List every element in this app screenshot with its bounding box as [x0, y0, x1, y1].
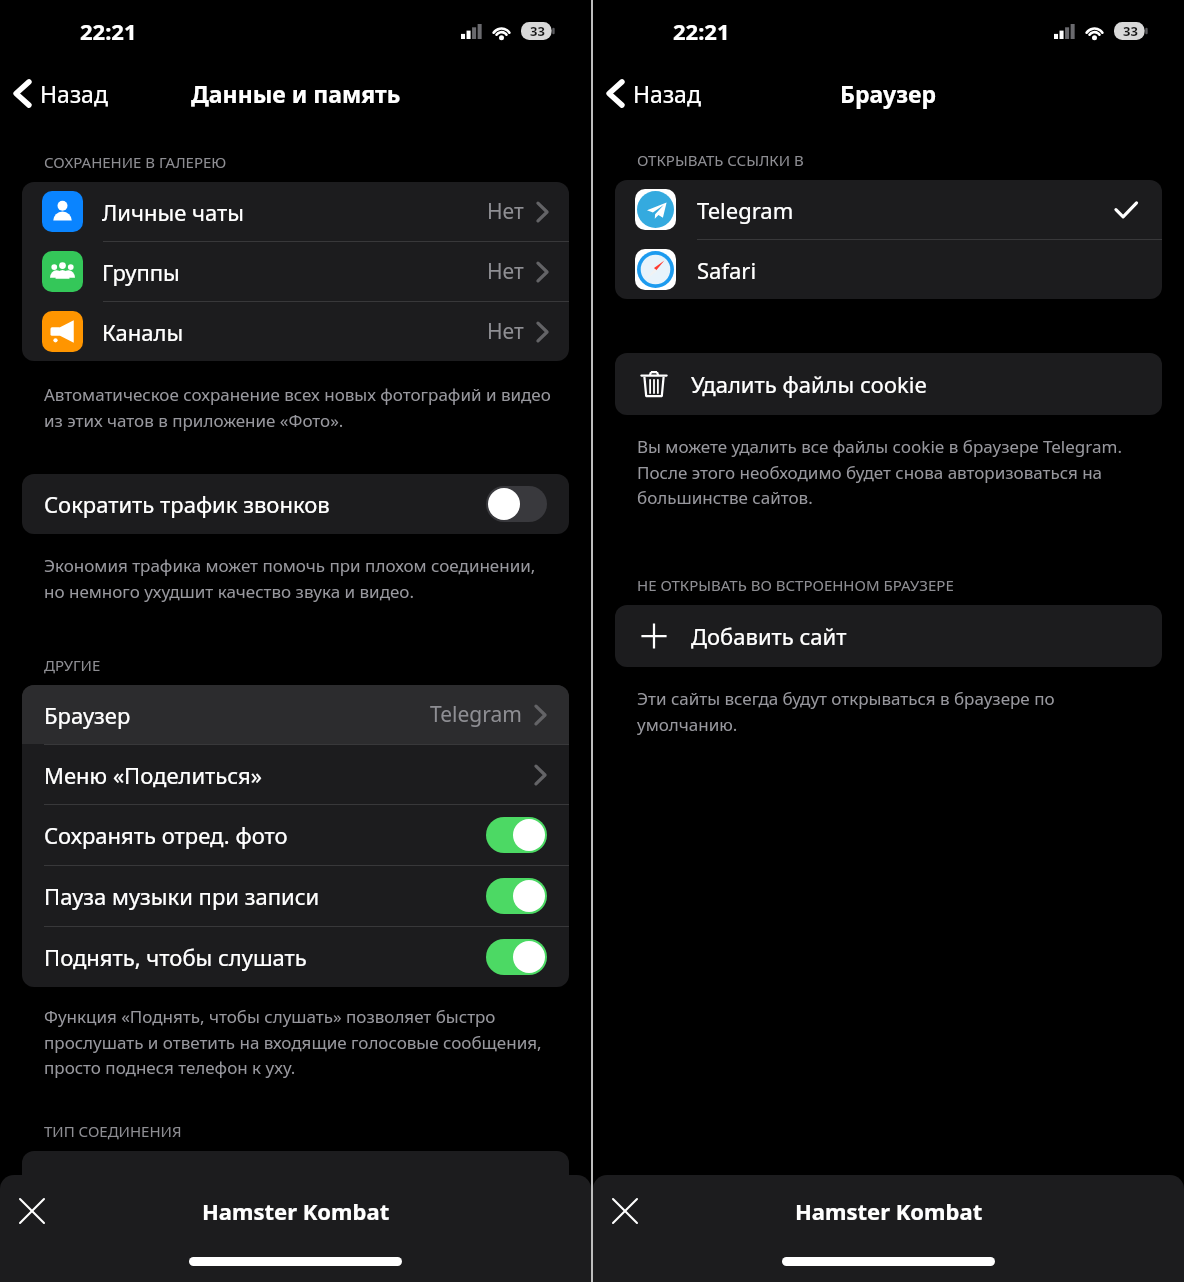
staticText: Личные чаты	[102, 197, 487, 227]
staticText: Группы	[102, 257, 487, 287]
button[interactable]: Toggle	[486, 939, 547, 975]
staticText: Экономия трафика может помочь при плохом…	[44, 554, 555, 603]
button[interactable]: Close	[601, 1187, 649, 1235]
staticText: Нет	[487, 317, 524, 346]
staticText: 22:21	[673, 16, 730, 46]
staticText: Hamster Kombat	[202, 1196, 390, 1226]
button[interactable]: Toggle	[486, 817, 547, 853]
staticText: Вы можете удалить все файлы cookie в бра…	[637, 435, 1148, 509]
staticText: Браузер	[840, 78, 937, 109]
button[interactable]: Telegram	[615, 180, 1162, 239]
staticText: НЕ ОТКРЫВАТЬ ВО ВСТРОЕННОМ БРАУЗЕРЕ	[637, 575, 954, 595]
staticText: ТИП СОЕДИНЕНИЯ	[44, 1121, 182, 1141]
button[interactable]: Добавить сайт	[615, 605, 1162, 667]
button[interactable]: Toggle	[486, 486, 547, 522]
staticText: СОХРАНЕНИЕ В ГАЛЕРЕЮ	[44, 152, 227, 172]
staticText: Поднять, чтобы слушать	[44, 942, 486, 972]
staticText: 33	[530, 22, 545, 40]
staticText: Удалить файлы cookie	[691, 369, 927, 399]
staticText: Пауза музыки при записи	[44, 881, 486, 911]
staticText: Назад	[633, 78, 701, 109]
staticText: Функция «Поднять, чтобы слушать» позволя…	[44, 1005, 555, 1079]
staticText: ОТКРЫВАТЬ ССЫЛКИ В	[637, 150, 804, 170]
button[interactable]: Группы	[22, 242, 569, 301]
staticText: 33	[1123, 22, 1138, 40]
staticText: Сократить трафик звонков	[44, 489, 486, 519]
staticText: Нет	[487, 257, 524, 286]
button[interactable]: Close	[8, 1187, 56, 1235]
staticText: Нет	[487, 197, 524, 226]
staticText: Данные и память	[191, 78, 401, 109]
staticText: Добавить сайт	[691, 621, 847, 651]
staticText: Сохранять отред. фото	[44, 820, 486, 850]
staticText: Эти сайты всегда будут открываться в бра…	[637, 687, 1148, 736]
button[interactable]: Поднять, чтобы слушать	[22, 927, 569, 987]
staticText: Telegram	[697, 195, 1114, 225]
button[interactable]: Браузер	[22, 685, 569, 744]
button[interactable]: Safari	[615, 240, 1162, 299]
staticText: ДРУГИЕ	[44, 655, 101, 675]
staticText: Меню «Поделиться»	[44, 760, 534, 790]
staticText: 22:21	[80, 16, 137, 46]
button[interactable]: Сохранять отред. фото	[22, 805, 569, 865]
staticText: Safari	[697, 255, 1138, 285]
staticText: Hamster Kombat	[795, 1196, 983, 1226]
staticText: Telegram	[430, 700, 522, 729]
staticText: Каналы	[102, 317, 487, 347]
staticText: Автоматическое сохранение всех новых фот…	[44, 383, 555, 432]
button[interactable]: Пауза музыки при записи	[22, 866, 569, 926]
staticText: Браузер	[44, 700, 430, 730]
staticText: Назад	[40, 78, 108, 109]
button[interactable]: Меню «Поделиться»	[22, 745, 569, 804]
button[interactable]: Каналы	[22, 302, 569, 361]
button[interactable]: Назад	[593, 72, 715, 115]
button[interactable]: Назад	[0, 72, 122, 115]
button[interactable]: Удалить файлы cookie	[615, 353, 1162, 415]
button[interactable]: Toggle	[486, 878, 547, 914]
button[interactable]: Личные чаты	[22, 182, 569, 241]
button[interactable]: Сократить трафик звонков	[22, 474, 569, 534]
